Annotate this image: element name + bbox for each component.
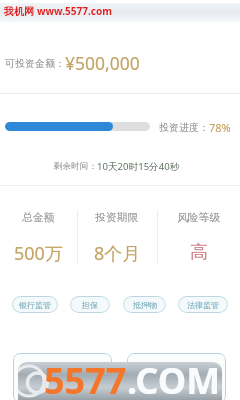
staticText: www.5577.com: [37, 4, 112, 18]
staticText: 高: [190, 241, 208, 264]
staticText: 8个月: [94, 241, 141, 266]
button[interactable]: 银行监管: [12, 296, 58, 313]
button[interactable]: 项目详情: [13, 353, 112, 400]
staticText: 可投资金额：: [5, 57, 65, 70]
button[interactable]: 立即投资: [127, 353, 226, 400]
staticText: 抵押物: [133, 300, 157, 310]
staticText: 银行监管: [19, 300, 51, 310]
staticText: 风险等级: [177, 211, 221, 225]
staticText: 立即投资: [155, 371, 199, 385]
staticText: 剩余时间：: [54, 161, 97, 172]
button[interactable]: 抵押物: [123, 296, 166, 313]
staticText: ¥500,000: [65, 51, 140, 75]
button[interactable]: 担保: [70, 296, 110, 313]
staticText: 10天20时15分40秒: [97, 160, 180, 173]
staticText: 78%: [209, 120, 231, 135]
staticText: 法律监管: [187, 300, 219, 310]
staticText: 5577: [44, 362, 127, 394]
staticText: 投资期限: [95, 211, 139, 225]
button[interactable]: 法律监管: [178, 296, 228, 313]
staticText: .COM: [127, 362, 221, 394]
staticText: 我机网: [4, 5, 34, 18]
staticText: 担保: [82, 300, 98, 310]
staticText: 总金额: [22, 211, 55, 225]
staticText: 项目详情: [41, 371, 85, 385]
staticText: 投资进度：: [159, 121, 209, 134]
staticText: 500万: [14, 241, 63, 266]
